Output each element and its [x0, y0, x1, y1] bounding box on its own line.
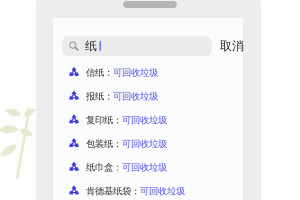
button[interactable]: 报纸：	[61, 85, 235, 108]
staticText: 复印纸：	[86, 114, 122, 126]
staticText: 肯德基纸袋：	[86, 185, 140, 197]
button[interactable]: 信纸：	[61, 61, 235, 85]
button[interactable]: 纸	[62, 36, 212, 56]
staticText: 信纸：	[86, 67, 113, 78]
button[interactable]: 纸巾盒：	[61, 156, 235, 179]
staticText: 纸巾盒：	[86, 162, 122, 173]
staticText: 报纸：	[86, 91, 113, 102]
button[interactable]: 复印纸：	[61, 108, 235, 132]
button[interactable]: 取消	[220, 36, 244, 56]
button[interactable]: 包装纸：	[61, 132, 235, 156]
staticText: 包装纸：	[86, 138, 122, 150]
staticText: 可回收垃圾	[122, 162, 167, 173]
staticText: 可回收垃圾	[113, 91, 158, 102]
staticText: 可回收垃圾	[113, 67, 158, 78]
staticText: 取消	[220, 39, 244, 53]
button[interactable]: 肯德基纸袋：	[61, 179, 235, 200]
staticText: 可回收垃圾	[122, 138, 167, 150]
staticText: 纸	[85, 39, 97, 53]
staticText: 可回收垃圾	[140, 185, 185, 197]
staticText: 可回收垃圾	[122, 114, 167, 126]
